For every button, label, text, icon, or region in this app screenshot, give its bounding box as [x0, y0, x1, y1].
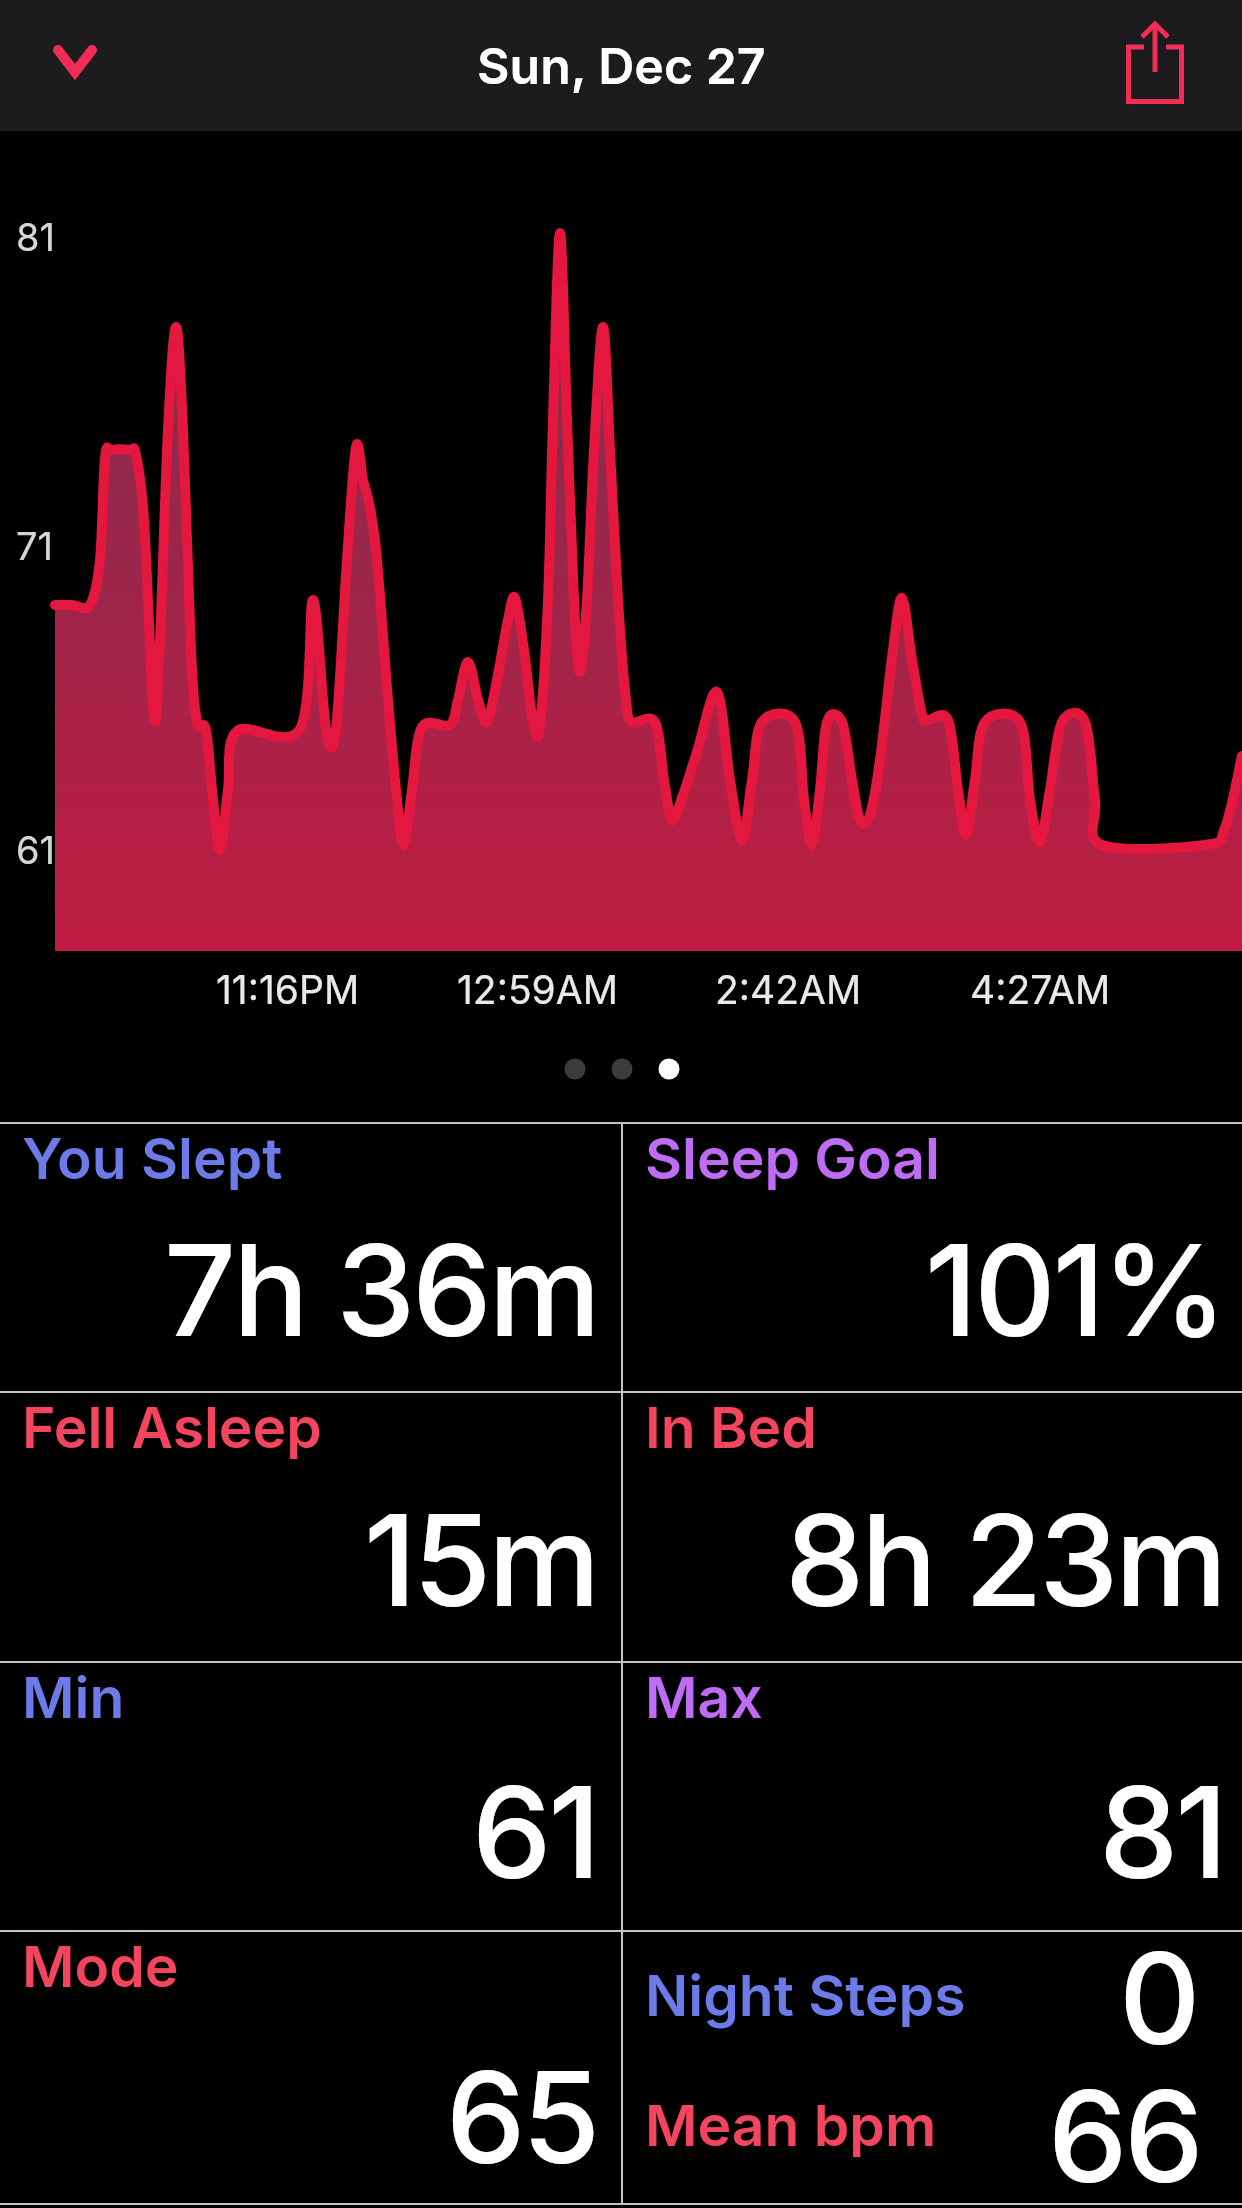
staticText: 8h 23m — [785, 1484, 1225, 1636]
staticText: 81 — [1099, 1756, 1225, 1908]
staticText: In Bed — [645, 1393, 817, 1462]
staticText: 0 — [1119, 1922, 1201, 2074]
button[interactable] — [1105, 8, 1205, 118]
button[interactable] — [623, 1392, 1242, 1662]
staticText: Night Steps — [645, 1961, 966, 2030]
staticText: Fell Asleep — [22, 1393, 322, 1462]
staticText: 66 — [1048, 2060, 1201, 2208]
button[interactable] — [623, 1662, 1242, 1931]
button[interactable] — [545, 1040, 700, 1098]
staticText: Mean bpm — [645, 2091, 937, 2160]
button[interactable] — [40, 30, 110, 92]
staticText: Sleep Goal — [645, 1124, 940, 1193]
staticText: Sun, Dec 27 — [477, 36, 766, 96]
button[interactable] — [623, 1931, 1242, 2204]
staticText: 71 — [16, 523, 53, 569]
staticText: 11:16PM — [216, 966, 360, 1013]
staticText: 4:27AM — [970, 966, 1111, 1013]
staticText: 7h 36m — [164, 1214, 598, 1366]
staticText: You Slept — [22, 1124, 283, 1193]
staticText: 61 — [16, 827, 56, 873]
button[interactable] — [623, 1123, 1242, 1392]
button[interactable] — [0, 1662, 621, 1931]
staticText: 101% — [925, 1214, 1225, 1366]
staticText: Min — [22, 1663, 125, 1732]
staticText: Mode — [22, 1932, 179, 2001]
staticText: 15m — [364, 1484, 598, 1636]
staticText: Max — [645, 1663, 763, 1732]
staticText: 65 — [446, 2041, 598, 2193]
button[interactable] — [0, 1931, 621, 2204]
staticText: 61 — [472, 1756, 598, 1908]
staticText: 12:59AM — [457, 966, 618, 1013]
button[interactable] — [0, 1392, 621, 1662]
button[interactable] — [0, 1123, 621, 1392]
staticText: 2:42AM — [715, 966, 862, 1013]
staticText: 81 — [16, 214, 55, 260]
